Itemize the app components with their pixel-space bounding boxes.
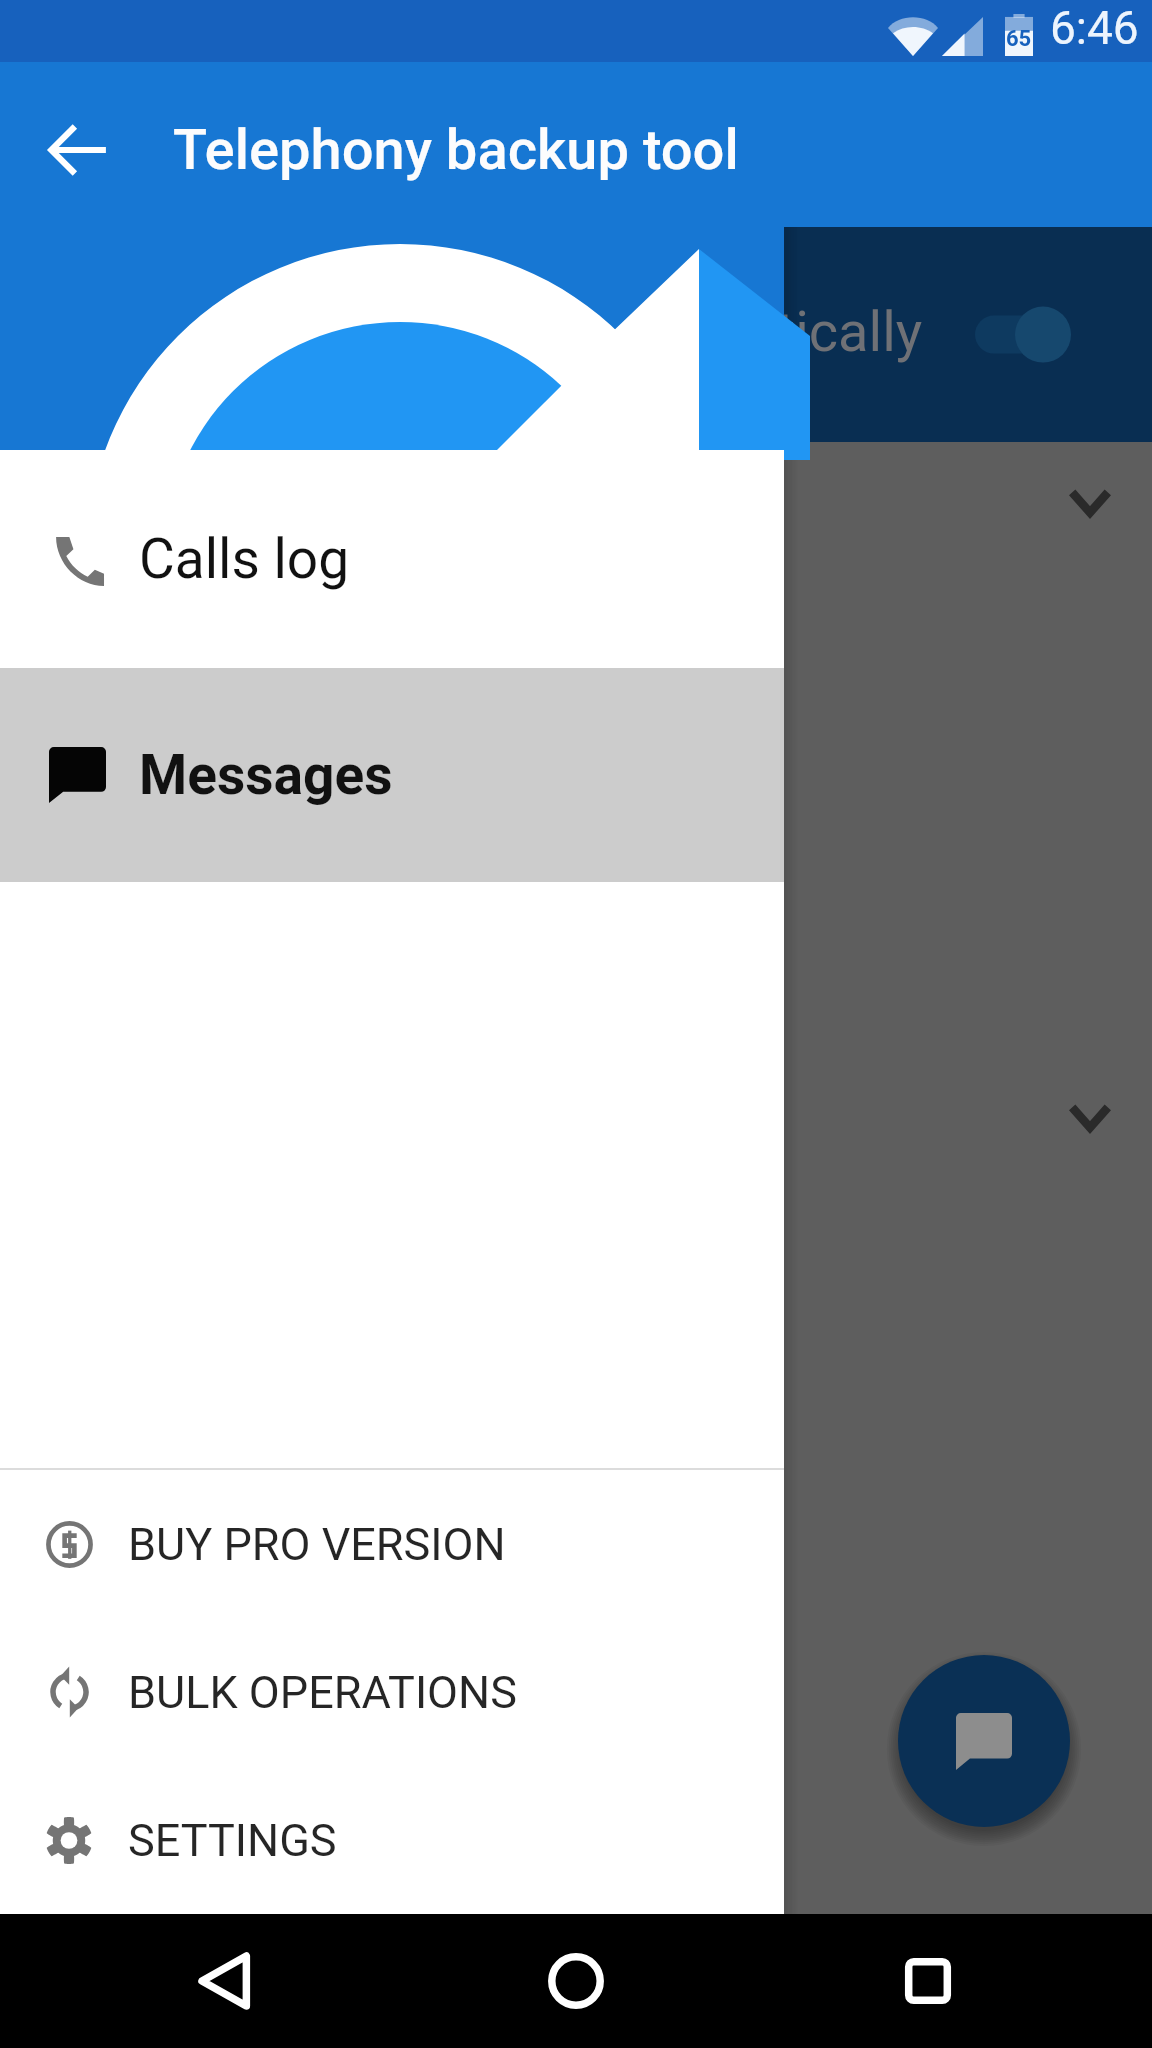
button[interactable]: Calls log [0,450,784,668]
staticText: Telephony backup tool [173,117,739,183]
button[interactable]: SETTINGS [0,1766,784,1914]
button[interactable]: Back [150,1914,298,2048]
button[interactable]: BUY PRO VERSION [0,1470,784,1618]
staticText: Backup automatically [387,299,923,365]
staticText: BULK OPERATIONS [128,1666,517,1719]
staticText: Calls log [139,527,350,591]
button[interactable]: Recents [854,1914,1002,2048]
button[interactable]: Navigate up [22,94,134,206]
staticText: Messages [139,743,393,807]
staticText: SETTINGS [128,1814,337,1867]
button[interactable]: New message [898,1655,1070,1827]
staticText: 6:46 [1050,1,1139,55]
staticText: 65 [1006,26,1032,48]
button[interactable]: Home [502,1914,650,2048]
staticText: BUY PRO VERSION [128,1518,506,1571]
button[interactable]: Messages [0,668,784,882]
button[interactable]: BULK OPERATIONS [0,1618,784,1766]
button[interactable]: Backup automatically [0,227,1152,442]
